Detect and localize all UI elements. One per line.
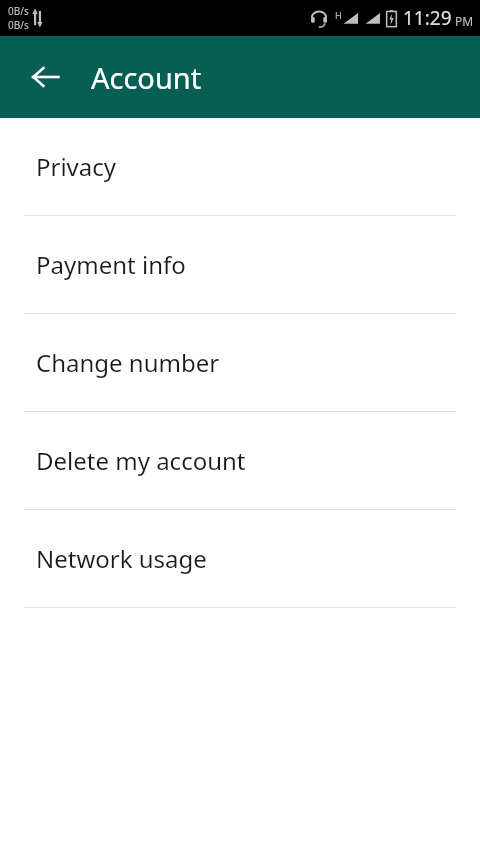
staticText: PM bbox=[455, 13, 474, 29]
button[interactable]: Network usage bbox=[0, 510, 480, 607]
button[interactable]: Payment info bbox=[0, 216, 480, 313]
staticText: Change number bbox=[36, 346, 220, 379]
staticText: Network usage bbox=[36, 542, 207, 575]
staticText: 11:29 bbox=[403, 5, 452, 31]
button[interactable]: Back bbox=[14, 46, 76, 108]
staticText: Account bbox=[91, 58, 202, 97]
staticText: Payment info bbox=[36, 248, 186, 281]
staticText: Privacy bbox=[36, 150, 117, 183]
button[interactable]: Change number bbox=[0, 314, 480, 411]
staticText: 0B/s bbox=[8, 4, 29, 18]
staticText: Delete my account bbox=[36, 444, 246, 477]
staticText: 0B/s bbox=[8, 18, 29, 32]
staticText: H bbox=[335, 9, 342, 21]
button[interactable]: Delete my account bbox=[0, 412, 480, 509]
button[interactable]: Privacy bbox=[0, 118, 480, 215]
